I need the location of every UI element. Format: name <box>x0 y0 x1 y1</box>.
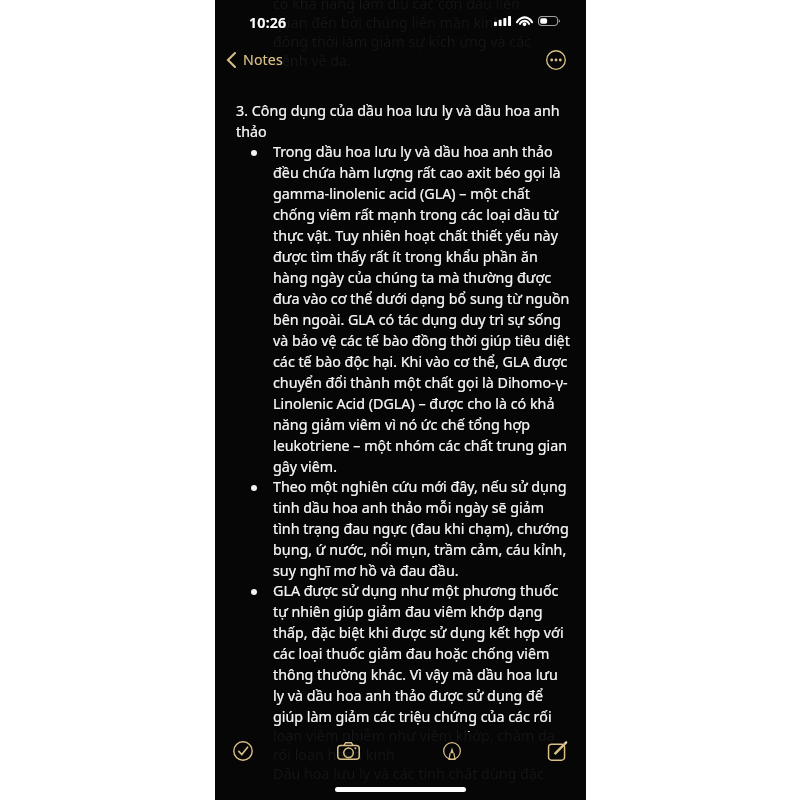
button[interactable]: New note <box>543 732 571 770</box>
staticText: Theo một nghiên cứu mới đây, nếu sử dụng… <box>273 477 570 581</box>
staticText: GLA được sử dụng như một phương thuốc tự… <box>273 581 570 732</box>
button[interactable]: Markup <box>438 732 466 770</box>
staticText: đồng thời làm giảm sự kích ứng và các <box>273 32 532 51</box>
button[interactable]: Notes <box>215 45 291 74</box>
staticText: quan đến bởi chúng liên mãn kinh <box>273 13 503 32</box>
staticText: loạn viêm nhiễm như viêm khớp, chàm da v… <box>273 726 570 745</box>
staticText: bệnh về da. <box>273 51 351 70</box>
button[interactable]: Checklist <box>229 732 257 770</box>
button[interactable]: Camera <box>334 732 362 770</box>
staticText: 3. Công dụng của dầu hoa lưu ly và dầu h… <box>236 101 578 142</box>
staticText: Dầu hoa lưu ly và các tinh chất dùng đặc… <box>273 764 570 783</box>
staticText: 10:26 <box>249 13 287 32</box>
button[interactable]: More options <box>546 50 566 70</box>
staticText: Notes <box>243 50 283 69</box>
staticText: Trong dầu hoa lưu ly và dầu hoa anh thảo… <box>273 142 570 477</box>
staticText: có khả năng làm dịu các cơn đau liên <box>273 0 520 13</box>
staticText: rối loạn hành kinh <box>273 745 395 764</box>
